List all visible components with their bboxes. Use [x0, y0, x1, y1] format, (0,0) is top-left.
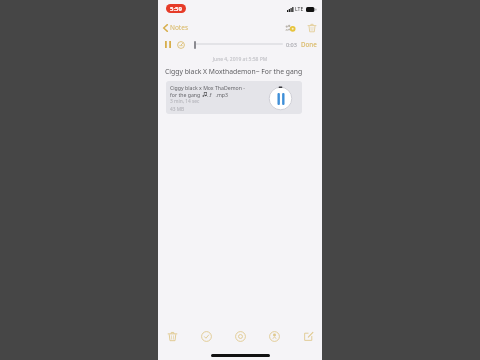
button[interactable]: Ciggy black x Mox ThaDemon - — [166, 81, 302, 114]
staticText: Done — [301, 40, 317, 48]
button[interactable]: Delete note — [165, 329, 179, 343]
staticText: for the gang — [170, 91, 202, 98]
staticText: Ciggy black x Mox ThaDemon - — [170, 84, 245, 91]
staticText: 5:59 — [170, 5, 182, 13]
button[interactable]: New note — [301, 329, 315, 343]
button[interactable]: Pause — [162, 39, 173, 50]
staticText: Ciggy black X Moxthademon~ For the gang — [165, 67, 315, 76]
button[interactable]: Share — [284, 21, 297, 34]
button[interactable]: Camera — [233, 329, 247, 343]
button[interactable]: Checklist — [199, 329, 213, 343]
button[interactable]: Delete — [305, 21, 318, 34]
staticText: Notes — [170, 23, 188, 32]
staticText: ..f .mp3 — [207, 91, 229, 98]
staticText: 43 MB — [170, 106, 185, 113]
button[interactable]: Playback speed — [175, 39, 186, 50]
staticText: LTE — [295, 6, 304, 13]
button[interactable]: Notes — [161, 21, 190, 34]
staticText: June 4, 2019 at 5:58 PM — [158, 56, 322, 63]
button[interactable]: Markup — [267, 329, 281, 343]
button[interactable]: Done — [300, 38, 318, 50]
button[interactable]: Pause audio — [269, 87, 292, 110]
staticText: 0:03 — [286, 41, 297, 48]
staticText: 3 min, 14 sec — [170, 98, 200, 105]
